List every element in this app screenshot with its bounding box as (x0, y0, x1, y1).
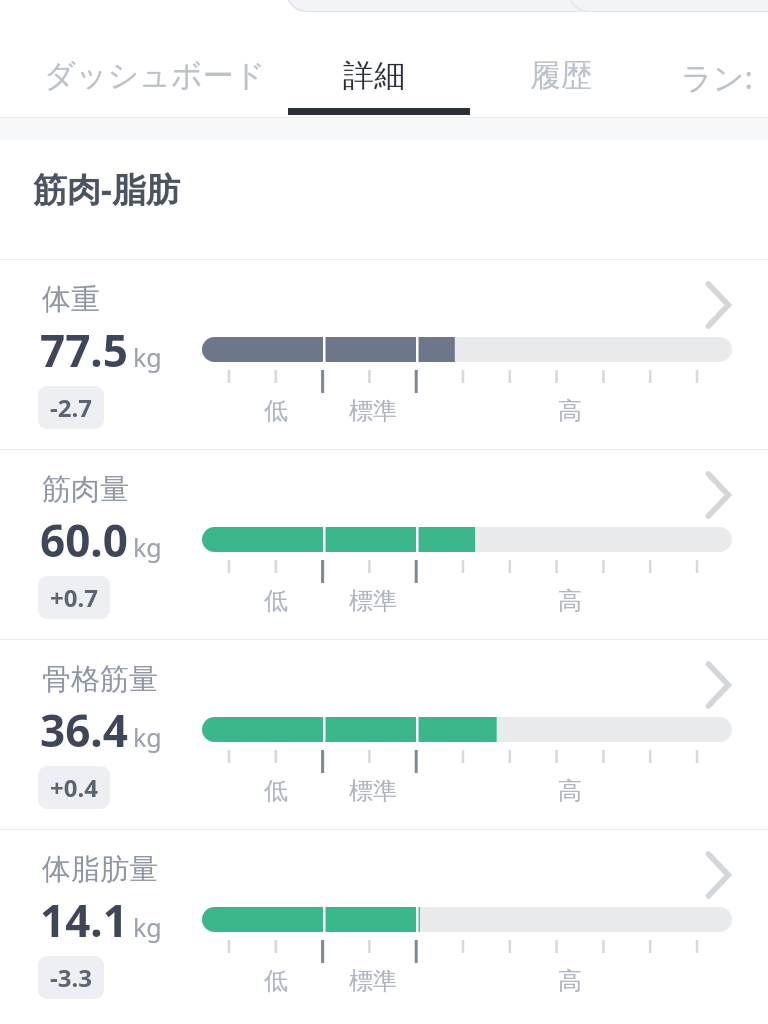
staticText: 標準 (349, 396, 397, 426)
staticText: 高 (558, 396, 582, 426)
staticText: 低 (264, 586, 288, 616)
staticText: 低 (264, 966, 288, 996)
staticText: 高 (558, 776, 582, 806)
staticText: 77.5 (40, 320, 128, 380)
staticText: 筋肉量 (42, 471, 129, 508)
staticText: 低 (264, 776, 288, 806)
staticText: 低 (264, 396, 288, 426)
staticText: 60.0 (40, 510, 128, 570)
staticText: 体脂肪量 (42, 851, 158, 888)
other: 体脂肪量 (698, 852, 744, 898)
staticText: kg (133, 530, 162, 564)
staticText: kg (133, 720, 162, 754)
staticText: +0.7 (50, 581, 98, 614)
button[interactable]: 履歴 (528, 54, 594, 97)
staticText: 高 (558, 586, 582, 616)
other: 骨格筋量 (698, 662, 744, 708)
staticText: 36.4 (40, 700, 128, 760)
staticText: -3.3 (50, 961, 92, 994)
staticText: 14.1 (40, 890, 128, 950)
button[interactable]: 骨格筋量 (0, 640, 768, 829)
staticText: kg (133, 340, 162, 374)
button[interactable]: 体重 (0, 260, 768, 449)
staticText: 履歴 (530, 56, 592, 95)
button[interactable]: ダッシュボード (42, 54, 268, 97)
button[interactable]: 筋肉量 (0, 450, 768, 639)
staticText: ラン: (681, 56, 753, 98)
button[interactable]: 体脂肪量 (0, 830, 768, 1019)
staticText: 標準 (349, 966, 397, 996)
staticText: kg (133, 910, 162, 944)
staticText: 標準 (349, 586, 397, 616)
staticText: 体重 (42, 281, 100, 318)
staticText: ダッシュボード (44, 56, 266, 95)
button[interactable]: 詳細 (341, 54, 407, 97)
staticText: 標準 (349, 776, 397, 806)
staticText: 詳細 (343, 56, 405, 95)
button[interactable]: ラン: (679, 54, 755, 100)
staticText: 骨格筋量 (42, 661, 158, 698)
other: 体重 (698, 282, 744, 328)
staticText: 高 (558, 966, 582, 996)
other: 筋肉量 (698, 472, 744, 518)
staticText: +0.4 (50, 771, 98, 804)
staticText: -2.7 (50, 391, 92, 424)
staticText: 筋肉-脂肪 (33, 166, 180, 212)
